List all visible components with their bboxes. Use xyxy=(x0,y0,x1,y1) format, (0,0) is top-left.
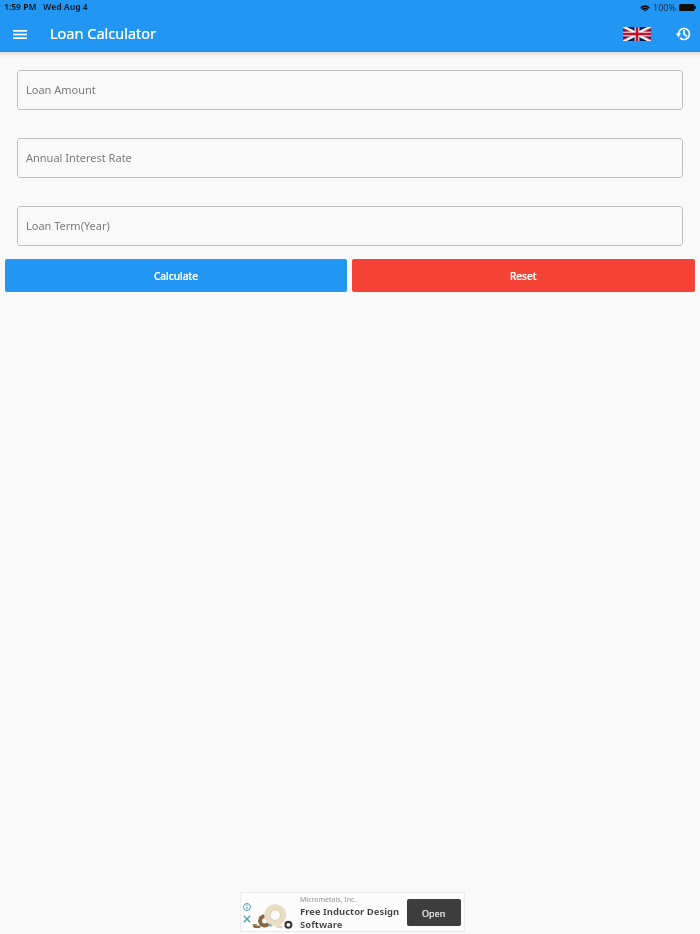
button[interactable]: Ad information xyxy=(240,892,465,932)
staticText: Free Inductor Design xyxy=(300,905,400,918)
button[interactable]: Loan Amount xyxy=(17,70,683,110)
button[interactable]: History xyxy=(664,16,700,52)
button[interactable]: Reset xyxy=(352,259,695,292)
button[interactable]: Open navigation menu xyxy=(5,20,34,49)
staticText: Calculate xyxy=(154,269,198,283)
button[interactable]: Ad information xyxy=(242,902,251,911)
button[interactable]: Loan Term(Year) xyxy=(17,206,683,246)
staticText: Loan Calculator xyxy=(50,23,157,43)
staticText: 1:59 PM Wed Aug 4 xyxy=(4,1,88,13)
staticText: Annual Interest Rate xyxy=(26,150,132,165)
staticText: Open xyxy=(422,907,446,919)
staticText: Loan Term(Year) xyxy=(26,218,110,233)
staticText: Loan Amount xyxy=(26,82,96,97)
button[interactable]: Close ad xyxy=(242,914,251,923)
staticText: Reset xyxy=(510,269,537,283)
button[interactable]: Open xyxy=(407,899,461,926)
button[interactable]: Change language xyxy=(622,16,664,52)
button[interactable]: Annual Interest Rate xyxy=(17,138,683,178)
staticText: Software xyxy=(300,918,343,931)
button[interactable]: Calculate xyxy=(5,259,347,292)
staticText: 100% xyxy=(653,1,676,13)
staticText: Micrometals, Inc. xyxy=(300,895,357,905)
